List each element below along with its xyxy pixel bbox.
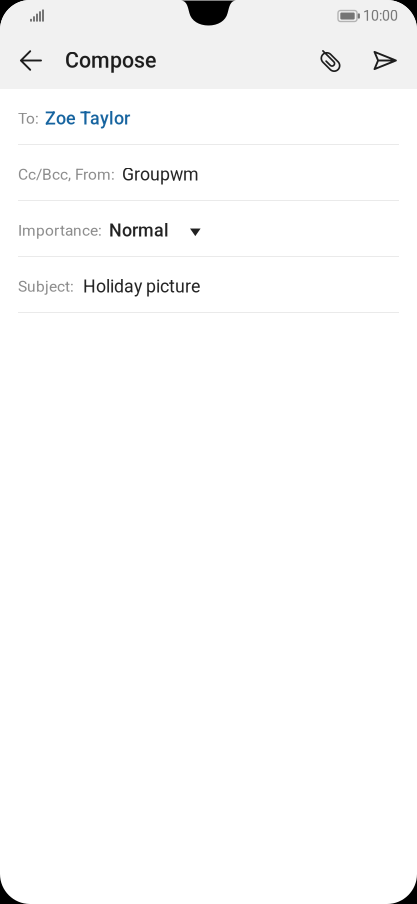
- staticText: Normal: [109, 220, 169, 241]
- staticText: Groupwm: [122, 164, 199, 185]
- button[interactable]: Attach: [307, 32, 363, 89]
- button[interactable]: To:: [0, 89, 417, 145]
- staticText: Importance:: [18, 221, 102, 239]
- button[interactable]: Cc/Bcc, From:: [0, 145, 417, 201]
- staticText: Compose: [65, 48, 156, 73]
- staticText: 10:00: [363, 8, 398, 24]
- button[interactable]: Importance:: [0, 201, 417, 257]
- button[interactable]: Compose: [52, 32, 156, 89]
- button[interactable]: Send: [363, 32, 417, 89]
- staticText: Subject:: [18, 277, 74, 295]
- staticText: To:: [18, 109, 39, 127]
- staticText: Zoe Taylor: [45, 108, 130, 129]
- button[interactable]: Subject:: [0, 257, 417, 313]
- staticText: Holiday picture: [83, 276, 200, 297]
- button[interactable]: Back: [0, 32, 52, 89]
- staticText: Cc/Bcc, From:: [18, 165, 115, 183]
